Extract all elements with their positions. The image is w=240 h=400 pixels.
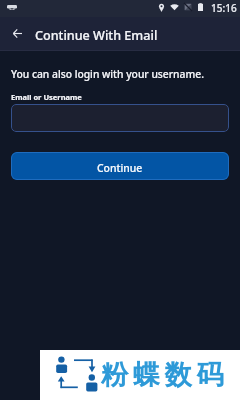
staticText: Continue bbox=[97, 161, 143, 175]
staticText: Email or Username bbox=[11, 92, 82, 102]
staticText: 15:16 bbox=[211, 1, 237, 15]
button[interactable]: Continue bbox=[11, 152, 229, 180]
button[interactable]: Back bbox=[4, 21, 30, 47]
staticText: Continue With Email bbox=[35, 27, 158, 44]
staticText: 粉蝶数码 bbox=[101, 358, 229, 392]
staticText: You can also login with your username. bbox=[11, 67, 204, 81]
button[interactable]: Email or Username input bbox=[11, 104, 229, 132]
